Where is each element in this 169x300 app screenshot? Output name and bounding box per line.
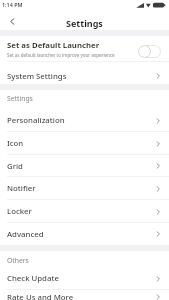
staticText: Personalization (7, 115, 65, 126)
staticText: Others (7, 256, 29, 265)
button[interactable]: Advanced (0, 223, 169, 245)
staticText: Advanced (7, 229, 44, 240)
staticText: Icon (7, 138, 24, 149)
button[interactable]: Check Update (0, 267, 169, 290)
staticText: Settings (7, 94, 33, 103)
staticText: System Settings (7, 71, 67, 82)
staticText: Set as default launcher to improve your … (7, 52, 115, 58)
button[interactable]: Set as Default Launcher (0, 36, 169, 62)
button[interactable]: Locker (0, 200, 169, 223)
button[interactable]: Grid (0, 155, 169, 177)
button[interactable]: Notifier (0, 177, 169, 200)
button[interactable]: Icon (0, 132, 169, 155)
staticText: Settings (66, 17, 103, 29)
staticText: Notifier (7, 183, 36, 194)
staticText: Locker (7, 206, 32, 217)
button[interactable]: Personalization (0, 109, 169, 132)
button[interactable]: Rate Us and More (0, 290, 169, 300)
button[interactable]: System Settings (0, 62, 169, 84)
button[interactable] (138, 45, 161, 58)
staticText: 1:14 PM (2, 1, 23, 8)
button[interactable] (9, 18, 16, 25)
staticText: Rate Us and More (7, 292, 74, 300)
staticText: Grid (7, 161, 23, 172)
staticText: Check Update (7, 273, 59, 284)
staticText: Set as Default Launcher (7, 40, 100, 51)
